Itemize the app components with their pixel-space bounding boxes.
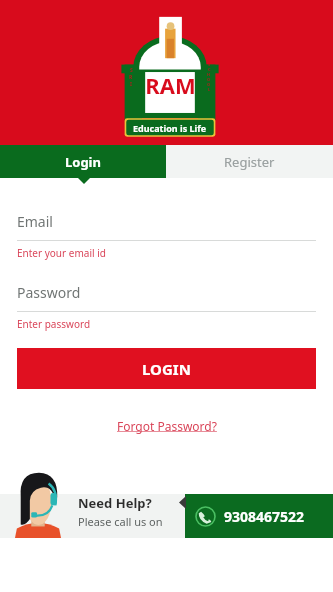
staticText: C bbox=[208, 67, 211, 72]
button[interactable]: Login bbox=[0, 145, 166, 178]
staticText: O bbox=[207, 82, 211, 87]
staticText: Password bbox=[17, 283, 81, 302]
button[interactable]: Forgot Password? bbox=[109, 415, 225, 437]
staticText: Email bbox=[17, 212, 53, 231]
staticText: LOGIN bbox=[142, 359, 191, 379]
staticText: L bbox=[208, 87, 211, 92]
staticText: Enter password bbox=[17, 317, 91, 331]
staticText: Need Help? bbox=[78, 494, 152, 512]
staticText: Login bbox=[65, 153, 101, 171]
staticText: I bbox=[130, 81, 132, 88]
staticText: Enter your email id bbox=[17, 246, 106, 260]
staticText: S bbox=[208, 62, 211, 67]
staticText: O bbox=[207, 77, 211, 82]
staticText: S bbox=[130, 67, 133, 74]
button[interactable]: Register bbox=[166, 145, 333, 178]
staticText: Education is Life bbox=[133, 122, 207, 134]
button[interactable]: Call 9308467522 bbox=[185, 494, 333, 538]
staticText: RAM bbox=[145, 70, 196, 100]
staticText: Register bbox=[224, 153, 275, 171]
staticText: R bbox=[129, 74, 133, 81]
staticText: Forgot Password? bbox=[117, 418, 217, 434]
staticText: H bbox=[207, 72, 211, 77]
staticText: Please call us on bbox=[78, 514, 163, 529]
button[interactable]: LOGIN bbox=[17, 348, 316, 389]
staticText: 9308467522 bbox=[224, 507, 305, 526]
